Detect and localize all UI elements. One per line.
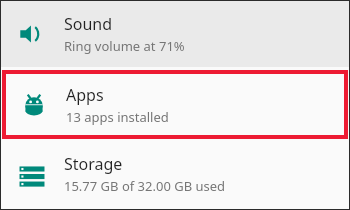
staticText: Sound xyxy=(64,13,113,35)
other: Apps xyxy=(2,92,66,118)
staticText: Apps xyxy=(66,84,104,106)
staticText: Ring volume at 71% xyxy=(64,37,185,55)
staticText: 15.77 GB of 32.00 GB used xyxy=(64,177,226,195)
other: Sound xyxy=(0,21,64,47)
button[interactable]: Storage xyxy=(0,139,350,208)
button[interactable]: Sound xyxy=(0,0,350,67)
staticText: Storage xyxy=(64,153,123,175)
button[interactable]: Apps xyxy=(2,70,348,139)
other: Storage xyxy=(0,161,64,187)
staticText: 13 apps installed xyxy=(66,108,169,126)
